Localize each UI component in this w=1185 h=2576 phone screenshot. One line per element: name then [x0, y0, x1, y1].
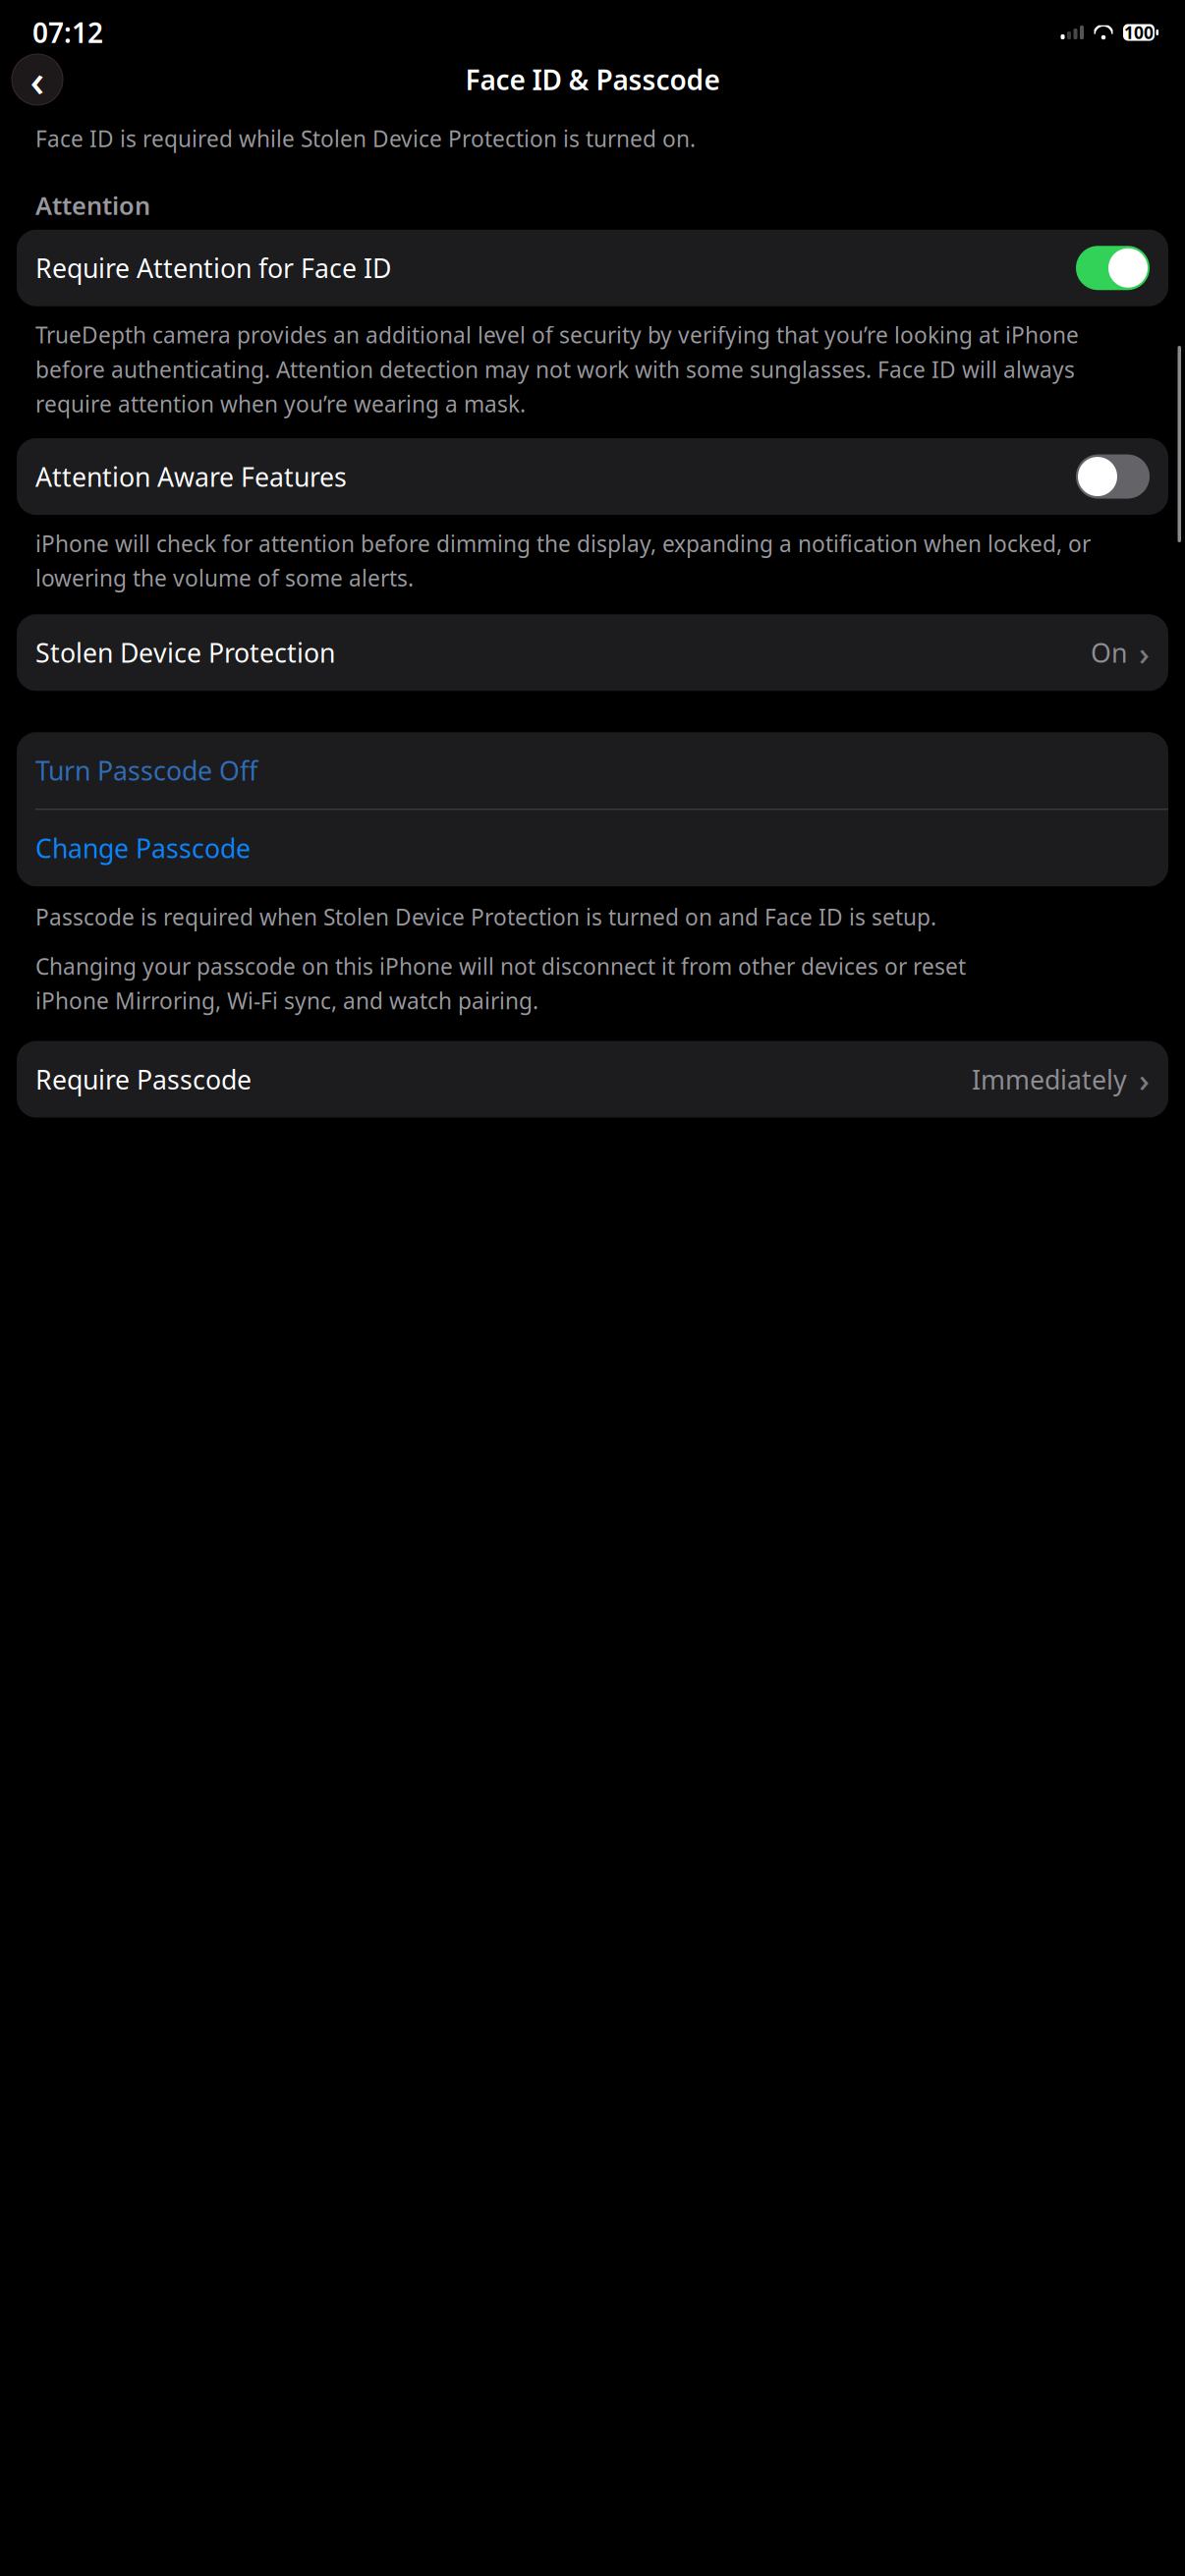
staticText: Change Passcode: [35, 831, 251, 865]
staticText: Require Attention for Face ID: [35, 251, 391, 285]
staticText: ›: [1139, 1058, 1150, 1101]
staticText: TrueDepth camera provides an additional …: [35, 320, 1079, 419]
staticText: Face ID is required while Stolen Device …: [35, 124, 696, 153]
staticText: iPhone will check for attention before d…: [35, 529, 1091, 593]
button[interactable]: Back: [12, 54, 63, 105]
staticText: ‹: [30, 50, 45, 109]
button[interactable]: Change Passcode: [17, 810, 1168, 886]
staticText: 100: [1124, 21, 1154, 44]
staticText: Stolen Device Protection: [35, 635, 335, 670]
staticText: Attention Aware Features: [35, 459, 347, 494]
button[interactable]: Turn Passcode Off: [17, 732, 1168, 809]
staticText: Turn Passcode Off: [35, 753, 257, 788]
staticText: Immediately: [972, 1062, 1127, 1097]
button[interactable]: Attention Aware Features: [0, 438, 1185, 515]
staticText: On: [1091, 635, 1127, 670]
staticText: Face ID & Passcode: [465, 61, 720, 98]
staticText: 07:12: [32, 14, 103, 51]
staticText: Require Passcode: [35, 1062, 252, 1097]
staticText: Passcode is required when Stolen Device …: [35, 902, 936, 932]
staticText: Changing your passcode on this iPhone wi…: [35, 951, 966, 1015]
button[interactable]: Require Attention for Face ID: [0, 230, 1185, 306]
button[interactable]: Require Passcode: [0, 1041, 1185, 1118]
button[interactable]: Stolen Device Protection: [0, 614, 1185, 691]
staticText: ›: [1139, 631, 1150, 674]
staticText: Attention: [35, 189, 150, 222]
